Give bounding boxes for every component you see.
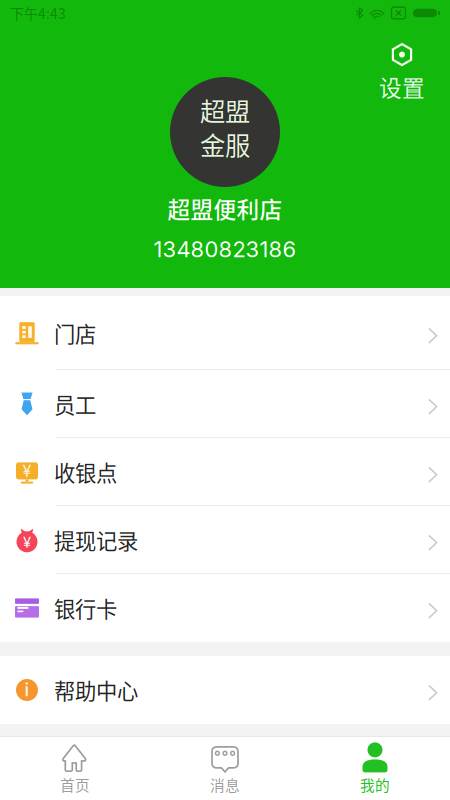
staticText: 收银点 (54, 457, 117, 487)
staticText: i (24, 679, 29, 700)
button[interactable]: i (0, 656, 450, 724)
staticText: 消息 (210, 774, 240, 795)
staticText: 银行卡 (54, 593, 117, 623)
staticText: 13480823186 (153, 236, 296, 262)
staticText: 下午4:43 (10, 3, 66, 23)
button[interactable]: 我的 (300, 736, 450, 800)
staticText: 门店 (54, 318, 96, 348)
button[interactable]: 首页 (0, 736, 150, 800)
button[interactable]: ¥ (0, 438, 450, 506)
staticText: 超盟 (200, 92, 250, 128)
button[interactable]: ¥ (0, 506, 450, 574)
staticText: 帮助中心 (54, 675, 138, 705)
button[interactable]: 银行卡 (0, 574, 450, 642)
staticText: 首页 (60, 774, 90, 795)
button[interactable]: 设置 (373, 41, 431, 105)
staticText: ¥ (22, 461, 31, 481)
staticText: 设置 (379, 70, 425, 103)
staticText: 我的 (360, 774, 390, 795)
button[interactable]: 员工 (0, 370, 450, 438)
button[interactable]: 门店 (0, 296, 450, 370)
staticText: 超盟便利店 (167, 192, 282, 225)
staticText: 员工 (54, 389, 96, 419)
staticText: 金服 (200, 126, 250, 162)
staticText: ¥ (23, 534, 31, 551)
staticText: 提现记录 (54, 525, 138, 555)
button[interactable]: 消息 (150, 736, 300, 800)
